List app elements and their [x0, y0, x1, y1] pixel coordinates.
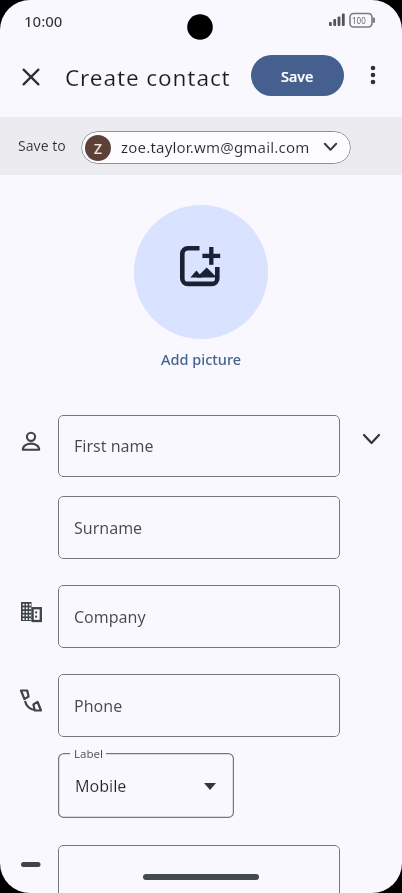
staticText: Company: [74, 606, 146, 628]
staticText: Z: [94, 139, 103, 158]
staticText: Save to: [18, 136, 66, 155]
staticText: Create contact: [65, 62, 231, 93]
button[interactable]: [134, 205, 268, 339]
staticText: 10:00: [24, 11, 63, 31]
button[interactable]: [353, 55, 393, 95]
button[interactable]: [9, 55, 53, 99]
staticText: 100: [352, 15, 366, 26]
staticText: Mobile: [75, 775, 127, 797]
staticText: Save: [281, 66, 314, 86]
staticText: Phone: [74, 695, 123, 717]
button[interactable]: First name: [58, 415, 340, 477]
button[interactable]: Company: [58, 585, 340, 648]
staticText: First name: [74, 435, 154, 457]
staticText: Add picture: [161, 349, 242, 369]
button[interactable]: Surname: [58, 496, 340, 559]
button[interactable]: Phone: [58, 674, 340, 737]
staticText: Surname: [74, 517, 143, 539]
button[interactable]: Add picture: [0, 348, 402, 370]
button[interactable]: [351, 419, 391, 459]
staticText: zoe.taylor.wm@gmail.com: [121, 137, 310, 157]
button[interactable]: Label: [58, 753, 234, 818]
button[interactable]: Save: [251, 55, 344, 96]
button[interactable]: Z: [81, 131, 351, 164]
button[interactable]: [58, 845, 340, 893]
staticText: Label: [74, 746, 104, 762]
